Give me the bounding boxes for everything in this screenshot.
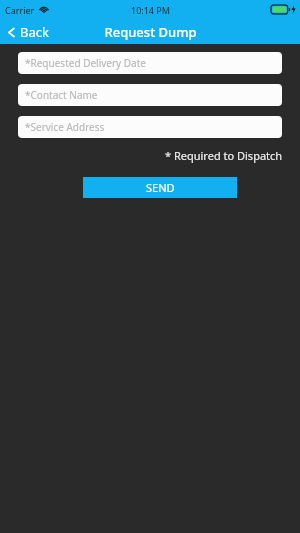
button[interactable]: Back [6, 23, 49, 41]
staticText: 10:14 PM [131, 4, 170, 16]
staticText: *Requested Delivery Date [25, 56, 146, 70]
button[interactable]: *Contact Name [18, 84, 282, 106]
staticText: SEND [146, 180, 175, 195]
staticText: Request Dump [104, 23, 197, 41]
button[interactable]: *Service Address [18, 116, 282, 138]
staticText: Back [20, 23, 49, 41]
staticText: * Required to Dispatch [165, 148, 283, 163]
staticText: Carrier [5, 4, 35, 16]
staticText: *Service Address [25, 120, 105, 134]
button[interactable]: SEND [83, 177, 237, 198]
button[interactable]: *Requested Delivery Date [18, 52, 282, 74]
staticText: *Contact Name [25, 88, 98, 102]
